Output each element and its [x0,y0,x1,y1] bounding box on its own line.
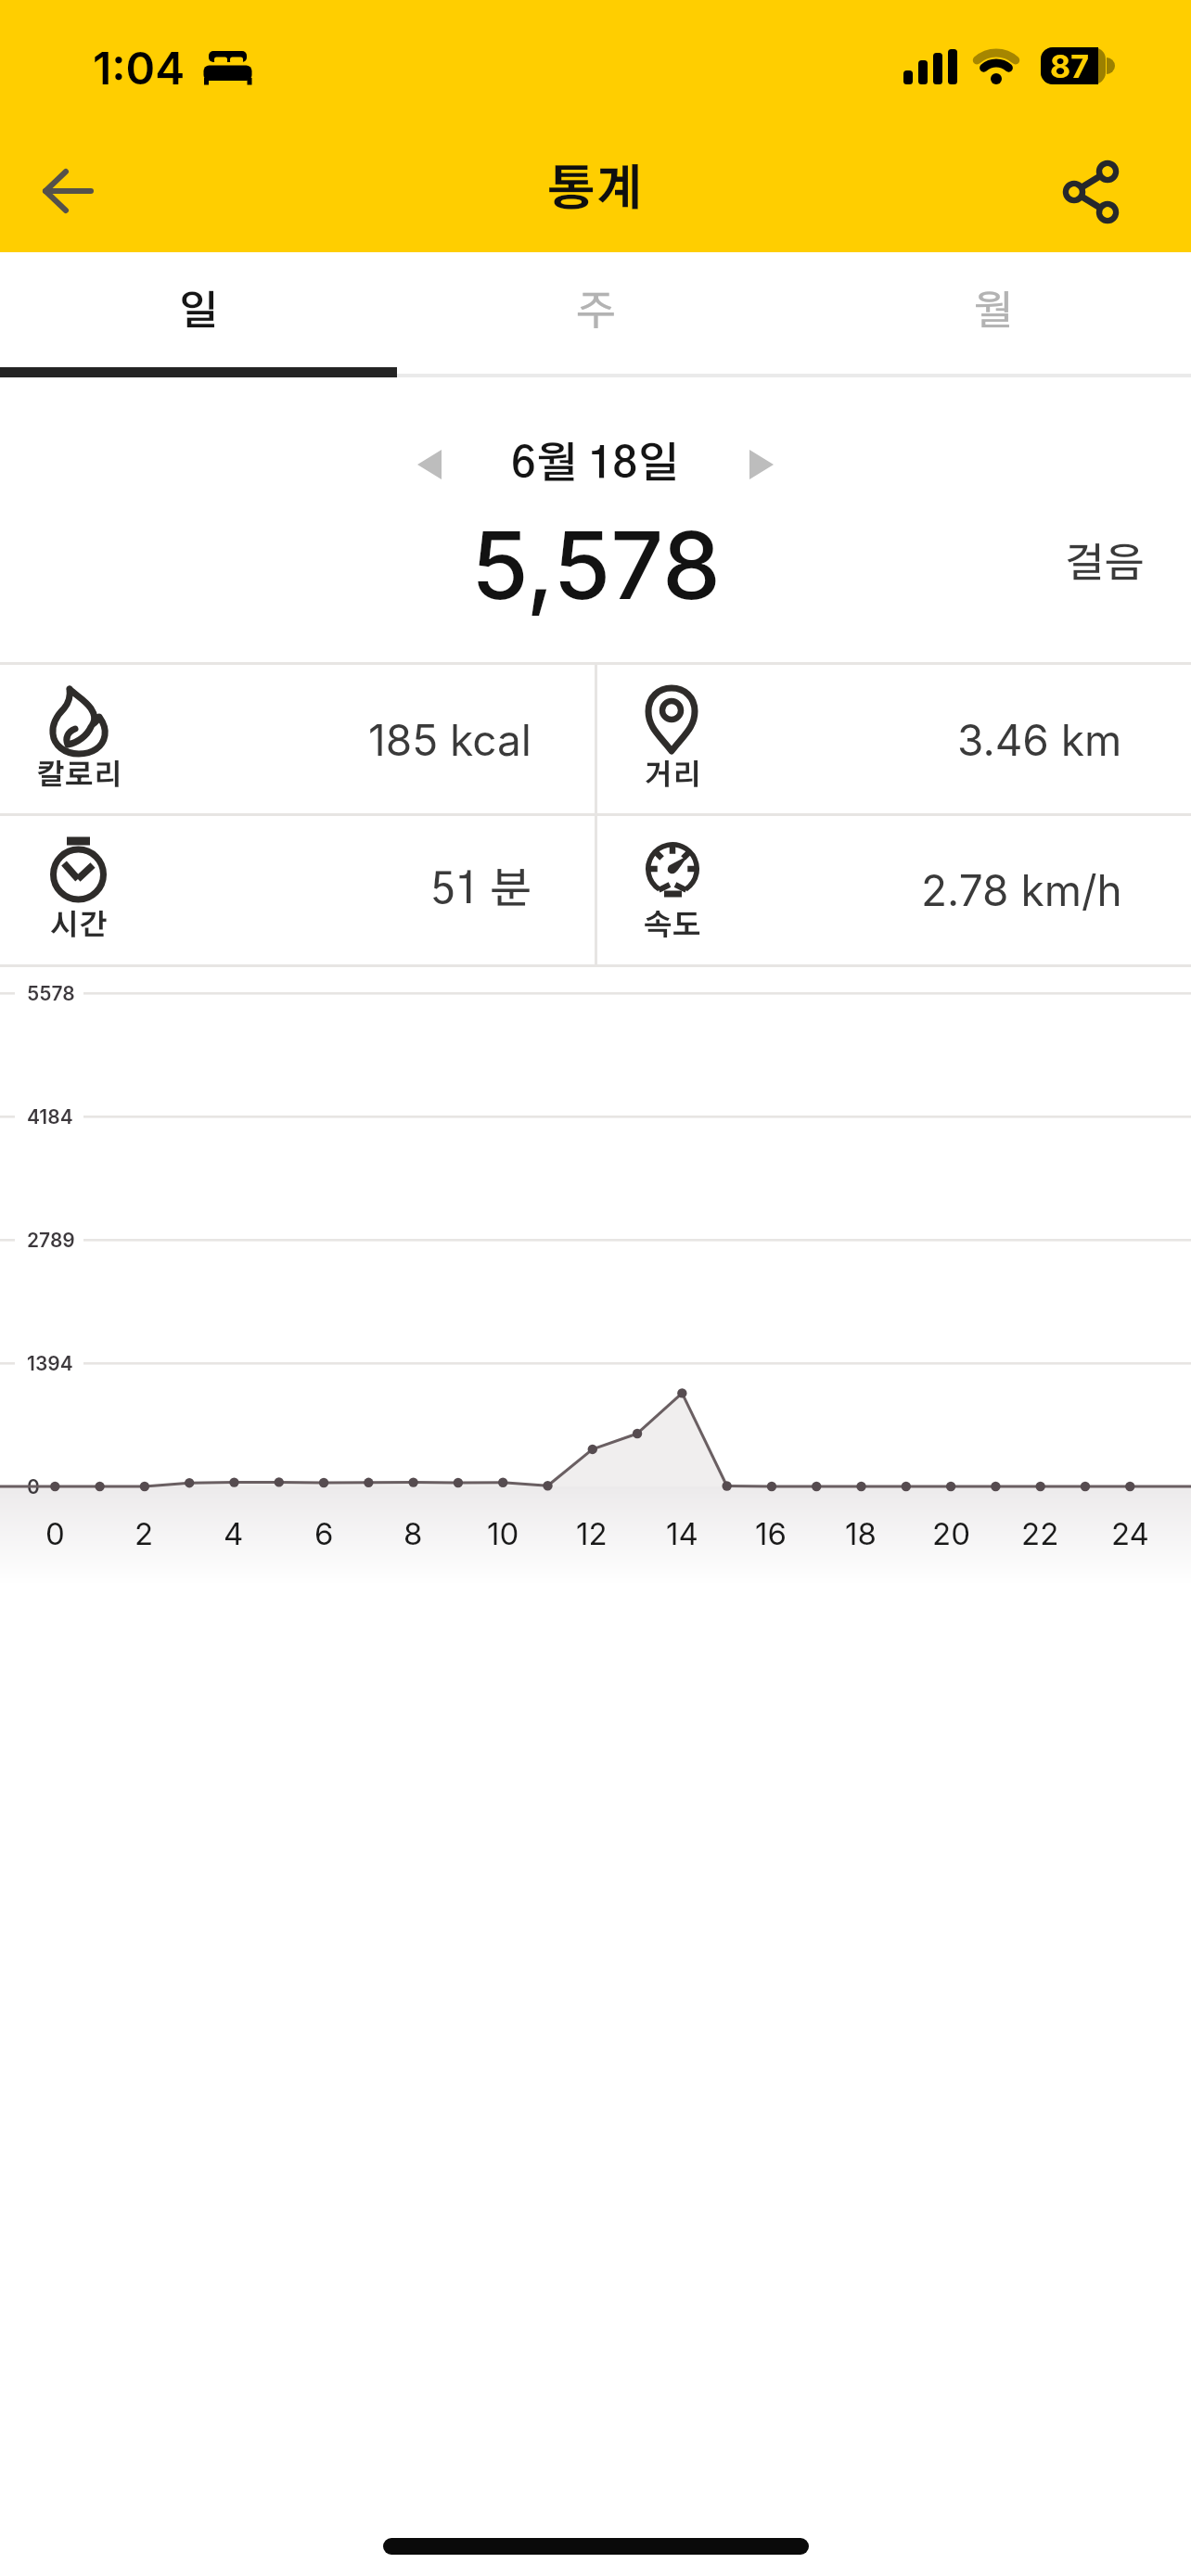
staticText: 2 [134,1515,154,1552]
staticText: 월 [973,292,1013,333]
staticText: 2789 [27,1229,75,1252]
staticText: 시간 [50,912,108,940]
staticText: 87 [1050,47,1089,85]
staticText: 주 [576,292,616,333]
button[interactable]: 월 [794,280,1191,345]
staticText: 거리 [644,761,701,790]
button[interactable]: 주 [397,280,794,345]
button[interactable] [1044,146,1137,238]
button[interactable] [736,436,801,493]
staticText: 5578 [27,982,75,1005]
staticText: 14 [666,1515,698,1552]
staticText: 6 [314,1515,334,1552]
staticText: 칼로리 [36,761,122,790]
staticText: 0 [27,1475,40,1498]
staticText: 20 [932,1515,970,1552]
staticText: 5,578 [471,509,721,621]
staticText: 일 [178,292,219,333]
button[interactable] [28,152,111,230]
staticText: 3.46 km [957,714,1122,766]
staticText: 6월 18일 [511,443,680,486]
staticText: 51 분 [431,869,531,912]
staticText: 18 [845,1515,877,1552]
staticText: 16 [755,1515,787,1552]
staticText: 22 [1021,1515,1059,1552]
staticText: 10 [487,1515,519,1552]
button[interactable] [390,436,455,493]
staticText: 185 kcal [368,714,531,766]
staticText: 24 [1111,1515,1149,1552]
staticText: 1:04 [93,41,186,93]
staticText: 1394 [27,1352,73,1375]
staticText: 통계 [547,167,644,215]
staticText: 속도 [644,912,701,940]
staticText: 2.78 km/h [921,864,1122,916]
button[interactable]: 일 [0,280,397,345]
staticText: 4184 [27,1105,73,1129]
staticText: 걸음 [1065,544,1145,585]
staticText: 12 [576,1515,608,1552]
staticText: 4 [224,1515,244,1552]
staticText: 8 [403,1515,423,1552]
staticText: 0 [45,1515,65,1552]
